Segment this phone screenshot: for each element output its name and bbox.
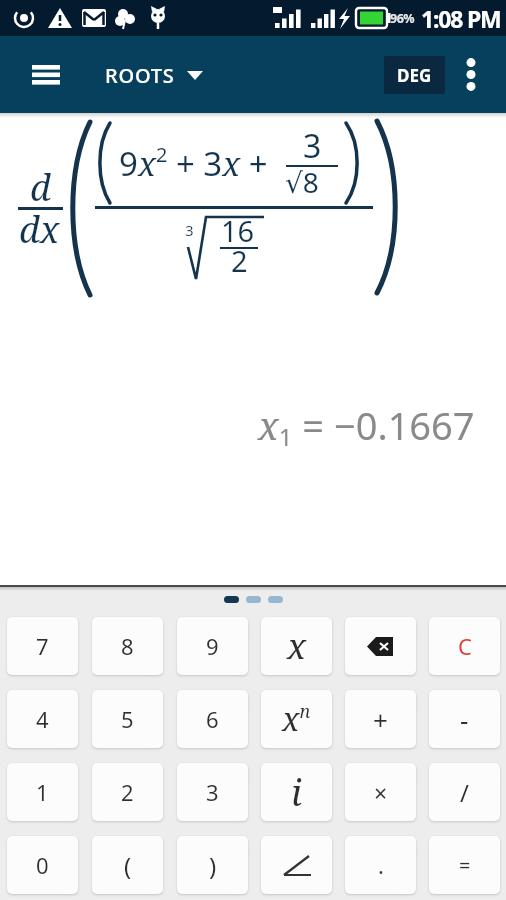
staticText: / [460, 776, 469, 809]
button[interactable]: . [345, 836, 416, 894]
button[interactable]: ROOTS [105, 47, 203, 103]
button[interactable] [261, 836, 332, 894]
button[interactable]: 9 [177, 617, 248, 675]
staticText: ( [124, 849, 132, 882]
button[interactable]: ( [92, 836, 163, 894]
button[interactable]: × [345, 763, 416, 821]
staticText: - [460, 702, 469, 737]
button[interactable] [345, 617, 416, 675]
button[interactable]: 7 [7, 617, 78, 675]
staticText: i [291, 768, 302, 817]
button[interactable]: i [261, 763, 332, 821]
staticText: 1 [36, 777, 49, 807]
staticText: 5 [121, 704, 134, 734]
staticText: x [287, 622, 307, 670]
staticText: x1 = −0.1667 [258, 399, 475, 453]
staticText: C [458, 631, 472, 661]
button[interactable]: DEG [384, 56, 445, 94]
staticText: = [459, 852, 471, 879]
button[interactable]: 4 [7, 690, 78, 748]
button[interactable]: 5 [92, 690, 163, 748]
button[interactable]: 3 [177, 763, 248, 821]
button[interactable]: + [345, 690, 416, 748]
button[interactable]: / [429, 763, 500, 821]
staticText: ) [209, 849, 217, 882]
staticText: 16 [221, 211, 255, 250]
button[interactable]: xn [261, 690, 332, 748]
button[interactable]: C [429, 617, 500, 675]
staticText: × [374, 777, 388, 808]
staticText: 1:08 PM [421, 3, 501, 34]
staticText: 3 [185, 220, 194, 240]
staticText: DEG [397, 64, 432, 87]
staticText: 4 [36, 704, 49, 734]
button[interactable]: 0 [7, 836, 78, 894]
staticText: . [378, 850, 384, 880]
button[interactable]: 1 [7, 763, 78, 821]
staticText: 96% [390, 10, 415, 27]
staticText: d [30, 163, 51, 212]
staticText: √8 [285, 163, 319, 201]
staticText: 9x2 + 3x + [119, 141, 268, 186]
staticText: 9 [206, 631, 219, 661]
staticText: 2 [121, 777, 134, 807]
button[interactable]: - [429, 690, 500, 748]
staticText: dx [19, 205, 60, 254]
staticText: 7 [36, 631, 49, 661]
button[interactable] [0, 36, 92, 113]
staticText: ROOTS [105, 62, 175, 89]
staticText: 6 [206, 704, 219, 734]
staticText: 0 [36, 850, 49, 880]
staticText: 2 [231, 241, 248, 280]
staticText: 3 [206, 777, 219, 807]
staticText: 3 [303, 124, 322, 168]
button[interactable]: ) [177, 836, 248, 894]
button[interactable] [450, 36, 491, 113]
button[interactable]: 6 [177, 690, 248, 748]
button[interactable]: 8 [92, 617, 163, 675]
staticText: + [373, 702, 388, 737]
button[interactable]: x [261, 617, 332, 675]
button[interactable]: 2 [92, 763, 163, 821]
staticText: xn [282, 697, 311, 741]
staticText: 8 [121, 631, 134, 661]
button[interactable]: = [429, 836, 500, 894]
